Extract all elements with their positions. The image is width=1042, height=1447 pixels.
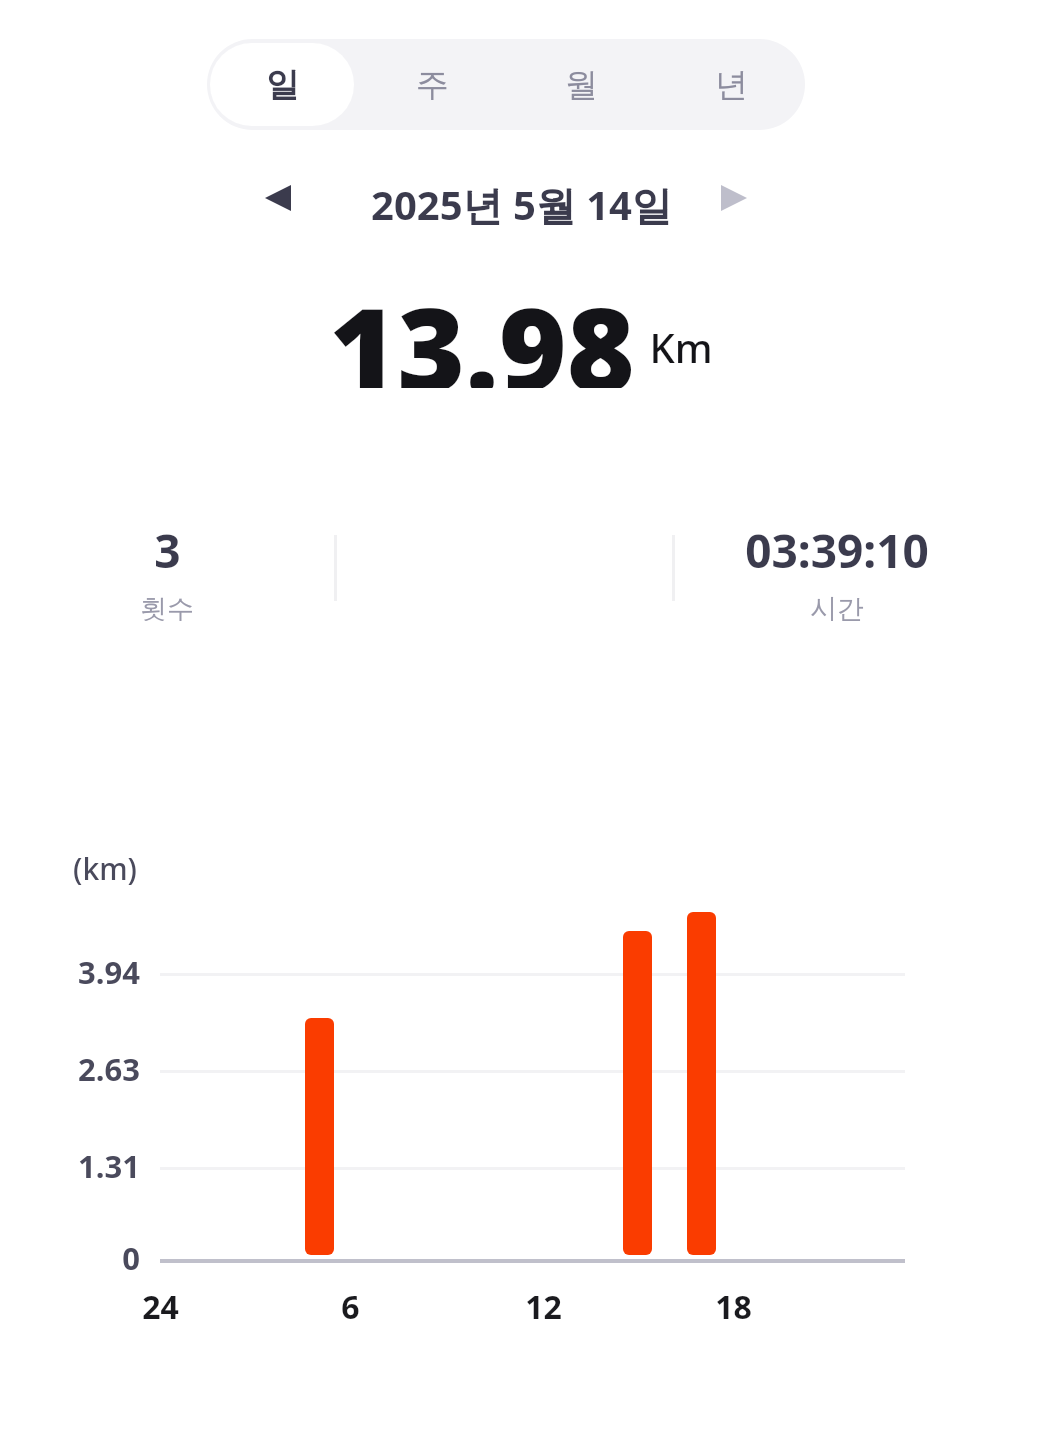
staticText: 24 xyxy=(142,1285,179,1329)
button[interactable]: 월 xyxy=(509,43,653,126)
staticText: 3.94 xyxy=(78,951,140,993)
staticText: 6 xyxy=(341,1285,360,1329)
staticText: 0 xyxy=(122,1237,140,1279)
staticText: 3 xyxy=(154,519,181,582)
staticText: 시간 xyxy=(810,592,864,626)
button[interactable]: 3 xyxy=(0,505,334,630)
staticText: Km xyxy=(649,320,713,374)
button[interactable]: 년 xyxy=(659,43,803,126)
button[interactable]: Previous day xyxy=(248,168,308,228)
staticText: 03:39:10 xyxy=(745,519,929,582)
staticText: 2025년 5월 14일 xyxy=(371,177,672,232)
button[interactable]: 03:39:10 xyxy=(668,505,1006,630)
staticText: 18 xyxy=(715,1285,752,1329)
staticText: 년 xyxy=(715,64,748,106)
staticText: 월 xyxy=(565,64,598,106)
button[interactable]: 주 xyxy=(360,43,504,126)
staticText: 2.63 xyxy=(78,1048,140,1090)
staticText: 일 xyxy=(266,64,299,106)
staticText: 12 xyxy=(525,1285,562,1329)
button[interactable]: Next day xyxy=(704,168,764,228)
button[interactable]: 일 xyxy=(210,43,354,126)
staticText: 1.31 xyxy=(78,1145,140,1187)
staticText: (km) xyxy=(73,848,137,889)
staticText: 13.98 xyxy=(329,268,635,388)
staticText: 횟수 xyxy=(140,592,194,626)
staticText: 주 xyxy=(416,64,449,106)
